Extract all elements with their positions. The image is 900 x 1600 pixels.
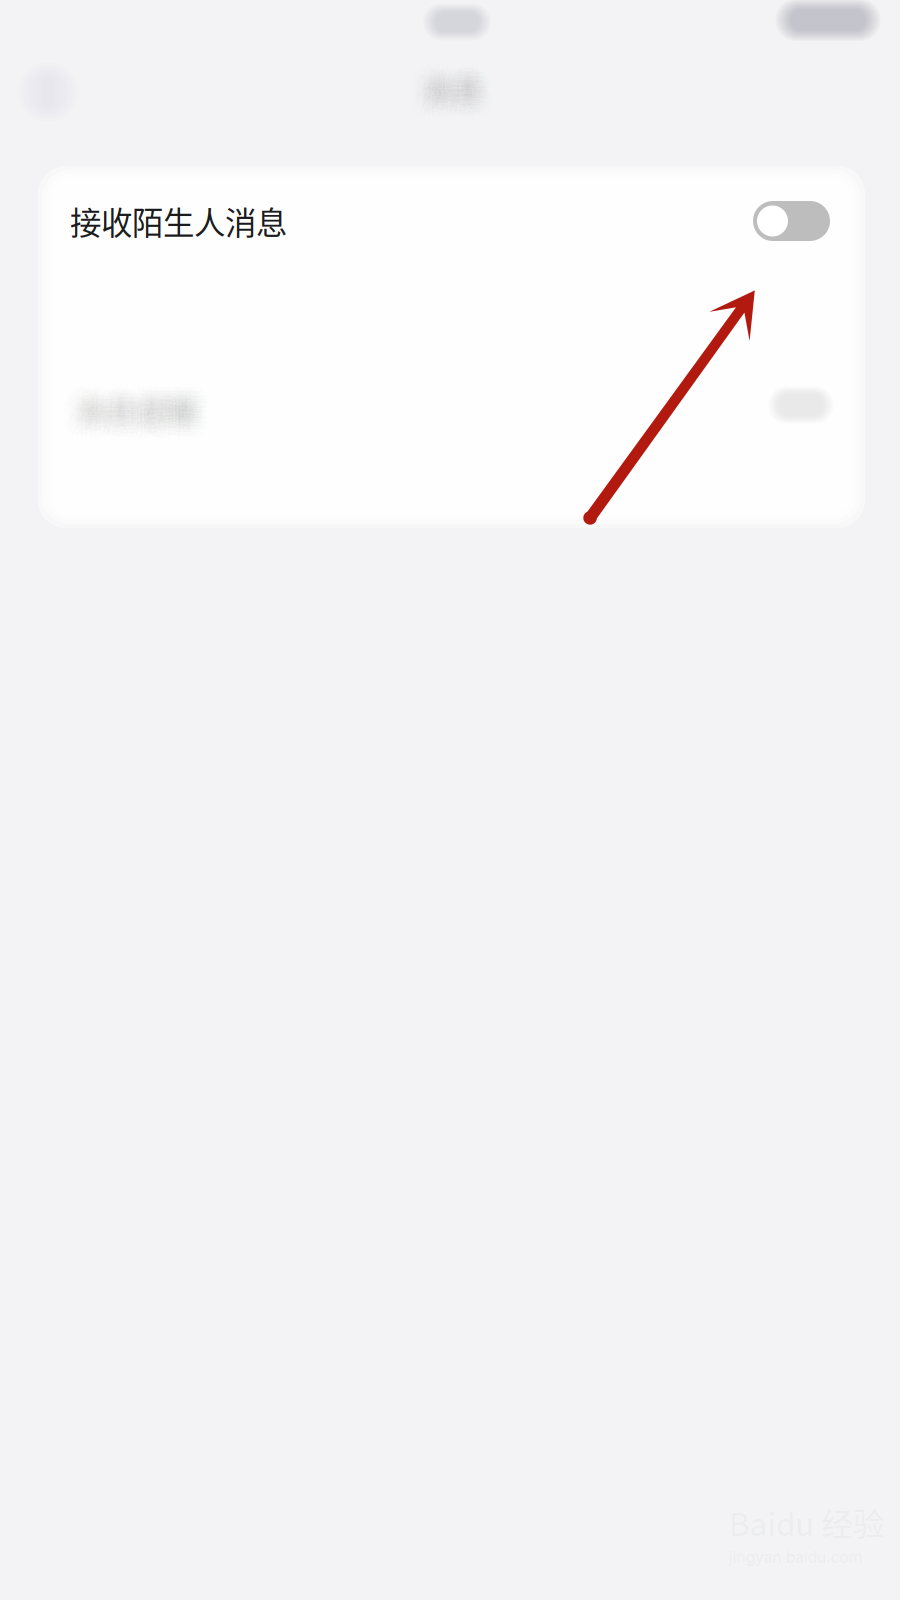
staticText: 消息提醒 [77, 393, 201, 439]
staticText: 消息提醒 [70, 382, 194, 427]
staticText: 消息提醒 [80, 395, 204, 441]
staticText: 消息提醒 [78, 398, 202, 444]
staticText: 消息提醒 [73, 380, 197, 426]
staticText: 消息 [428, 67, 490, 113]
staticText: 消息 [425, 65, 487, 110]
staticText: 消息提醒 [69, 396, 193, 442]
staticText: 消息 [429, 70, 491, 116]
staticText: 消息 [415, 70, 477, 115]
staticText: 消息 [412, 61, 474, 107]
staticText: 消息 [412, 64, 474, 110]
staticText: 消息提醒 [64, 394, 188, 440]
staticText: 消息 [433, 64, 495, 110]
staticText: 消息 [429, 60, 491, 105]
staticText: 消息提醒 [73, 378, 197, 424]
staticText: 消息 [411, 73, 473, 119]
staticText: 消息 [422, 56, 484, 101]
staticText: 消息 [420, 73, 482, 119]
button[interactable]: 接收陌生人消息 [38, 175, 865, 267]
staticText: 消息提醒 [67, 382, 191, 427]
staticText: 消息提醒 [77, 379, 201, 424]
staticText: 消息提醒 [65, 389, 189, 434]
staticText: 消息提醒 [75, 375, 199, 421]
staticText: 消息提醒 [73, 394, 197, 440]
button[interactable]: 返回 [10, 52, 86, 132]
staticText: 消息提醒 [71, 377, 195, 423]
staticText: 消息提醒 [77, 384, 201, 429]
staticText: 消息 [427, 74, 489, 120]
staticText: 消息提醒 [76, 387, 200, 433]
staticText: 消息 [417, 58, 479, 104]
staticText: 消息提醒 [70, 388, 194, 434]
button[interactable]: 接收陌生人消息开关 [753, 201, 830, 241]
staticText: 消息 [424, 70, 486, 116]
staticText: 消息提醒 [71, 391, 195, 436]
staticText: 消息提醒 [73, 397, 197, 443]
staticText: 消息提醒 [69, 395, 193, 440]
staticText: 消息 [430, 74, 492, 120]
staticText: 消息提醒 [79, 378, 203, 424]
staticText: 消息 [417, 67, 479, 113]
staticText: 消息 [415, 58, 477, 104]
staticText: 消息提醒 [72, 387, 196, 433]
staticText: 消息 [413, 73, 475, 118]
staticText: 消息 [424, 76, 486, 122]
staticText: 消息 [427, 64, 489, 110]
staticText: 消息提醒 [67, 392, 191, 438]
